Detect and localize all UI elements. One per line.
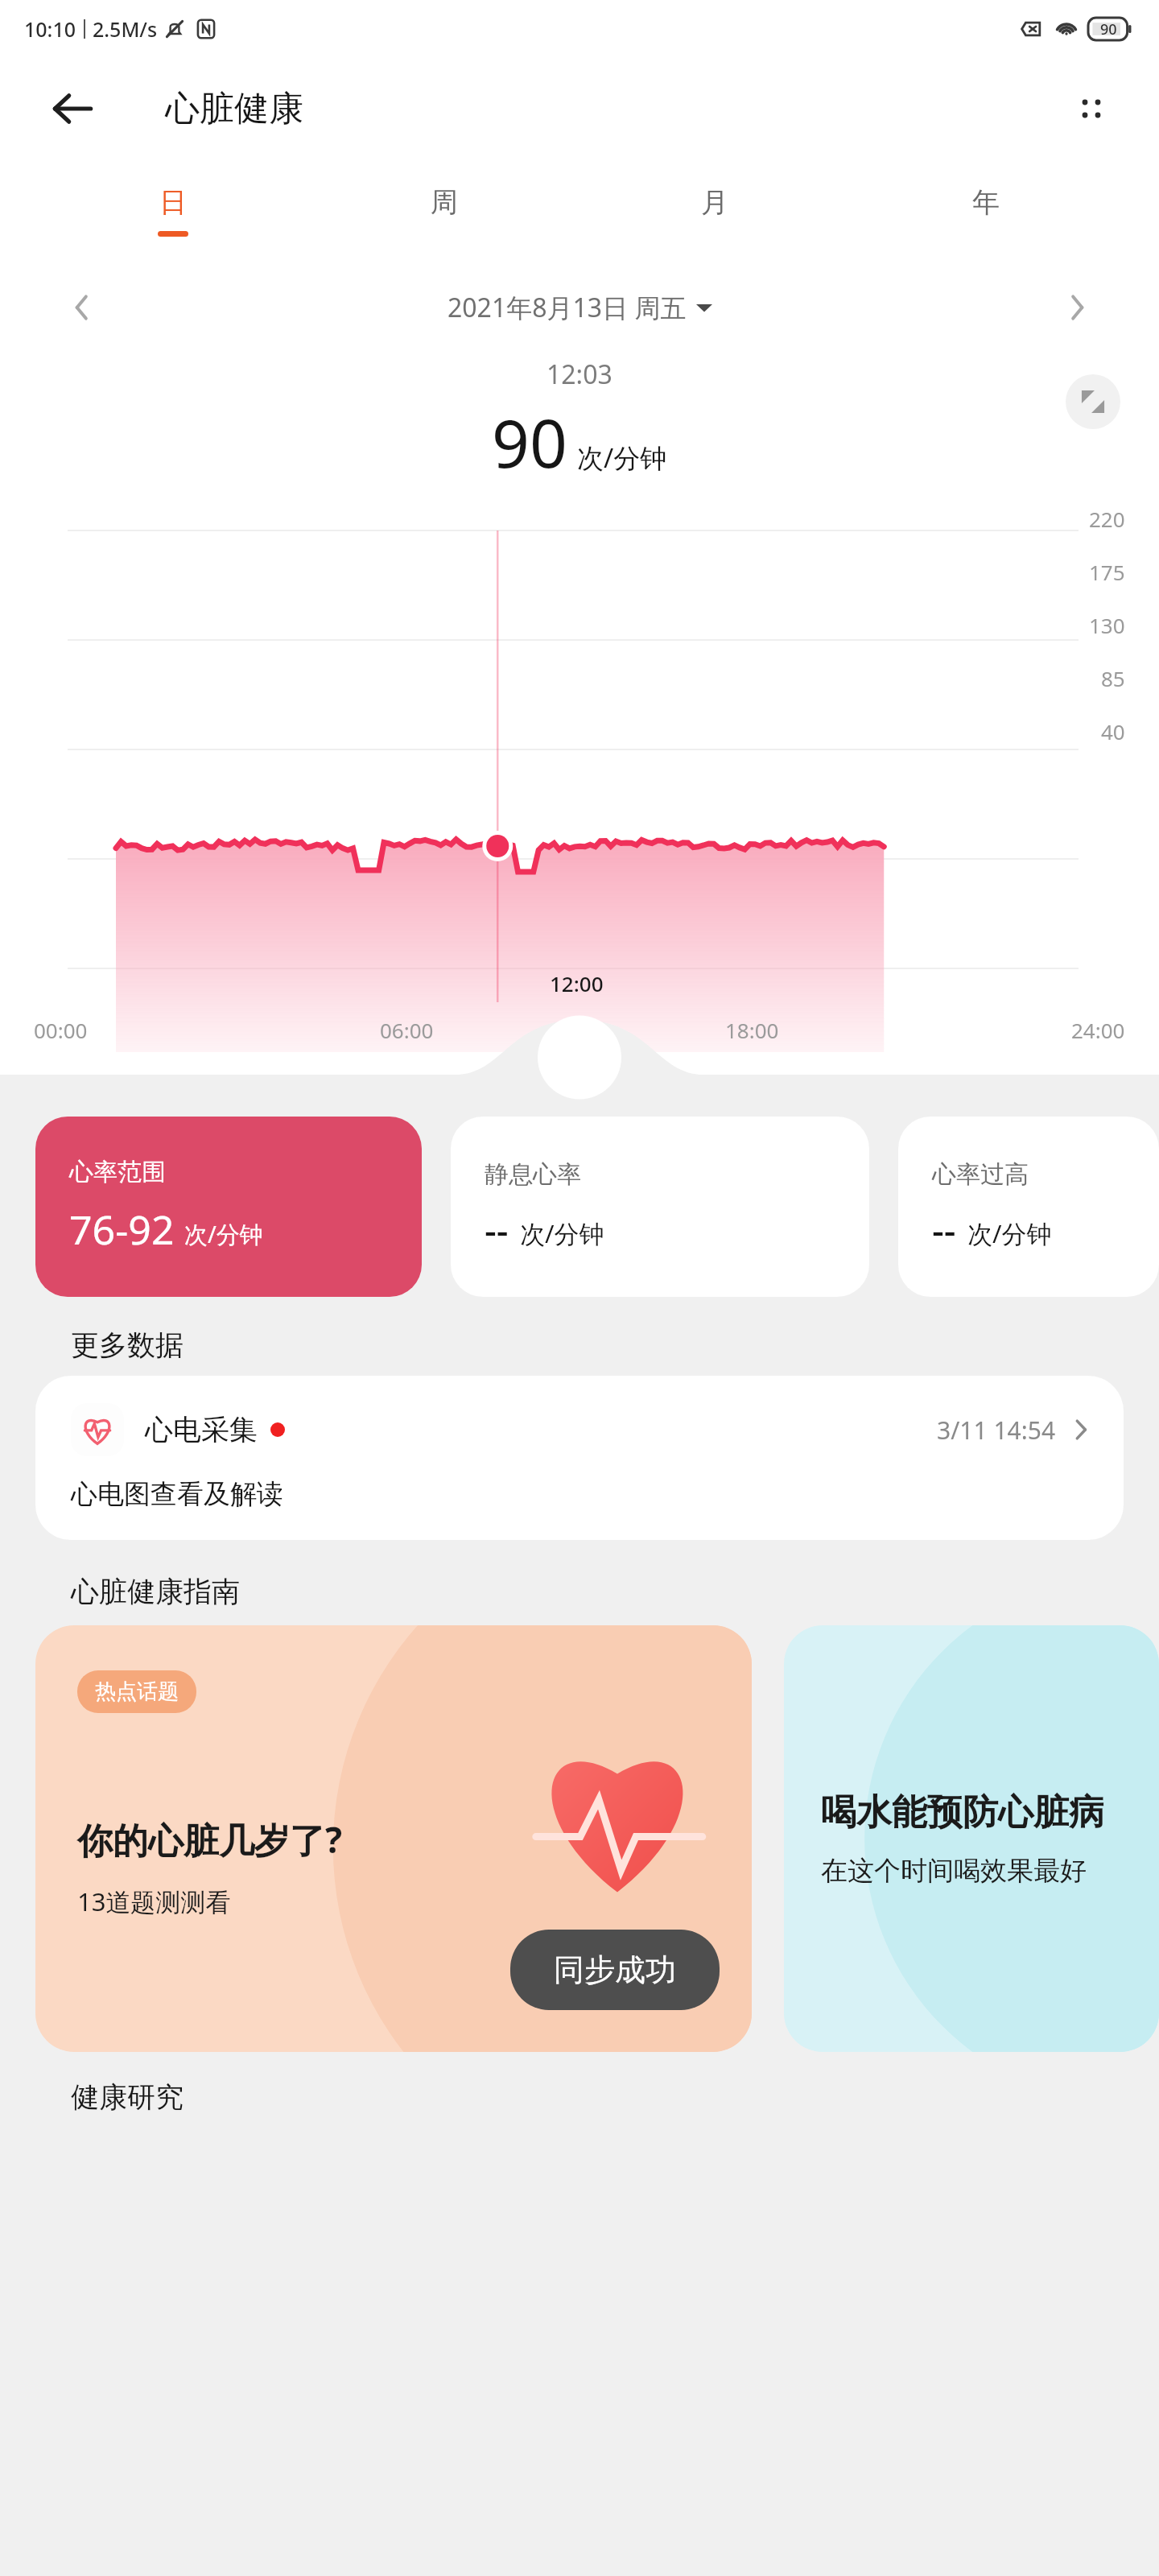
button[interactable]: 喝水能预防心脏病	[784, 1625, 1159, 2052]
staticText: 心脏健康指南	[71, 1574, 240, 1609]
staticText: 在这个时间喝效果最好	[821, 1854, 1087, 1888]
staticText: 心率过高	[932, 1159, 1029, 1190]
staticText: 3/11 14:54	[937, 1414, 1056, 1447]
staticText: 心率范围	[69, 1157, 166, 1187]
staticText: 12:03	[547, 357, 612, 392]
button[interactable]: 热点话题	[35, 1625, 752, 2052]
button[interactable]: 心率过高	[898, 1117, 1159, 1297]
staticText: --	[485, 1204, 509, 1255]
button[interactable]: 静息心率	[451, 1117, 869, 1297]
staticText: 心电图查看及解读	[71, 1477, 283, 1511]
staticText: 喝水能预防心脏病	[821, 1790, 1104, 1835]
staticText: 76-92	[69, 1202, 175, 1257]
staticText: 90	[1100, 19, 1117, 39]
staticText: 心电采集	[145, 1412, 258, 1447]
staticText: 00:00	[34, 1016, 88, 1044]
button[interactable]: 日	[137, 159, 209, 263]
staticText: 24:00	[1071, 1016, 1125, 1044]
staticText: 2.5M/s	[93, 15, 158, 43]
staticText: 220	[1089, 505, 1125, 533]
staticText: 85	[1101, 664, 1125, 692]
button[interactable]: 心电采集	[35, 1376, 1124, 1540]
button[interactable]: 2021年8月13日 周五	[448, 290, 712, 325]
button[interactable]: 更多选项	[1062, 80, 1120, 138]
staticText: 你的心脏几岁了?	[77, 1815, 342, 1864]
staticText: 心脏健康	[165, 87, 303, 130]
button[interactable]: 前一天	[56, 282, 108, 333]
staticText: 2021年8月13日 周五	[448, 290, 687, 325]
staticText: 健康研究	[71, 2079, 184, 2115]
button[interactable]: 返回	[47, 83, 98, 134]
staticText: 130	[1089, 611, 1125, 639]
staticText: 静息心率	[485, 1159, 581, 1190]
staticText: 06:00	[380, 1016, 434, 1044]
button[interactable]: 全屏查看	[1066, 374, 1120, 429]
staticText: 次/分钟	[184, 1218, 263, 1250]
staticText: 40	[1101, 717, 1125, 745]
staticText: 175	[1089, 558, 1125, 586]
staticText: 次/分钟	[520, 1216, 604, 1250]
staticText: 12:00	[550, 969, 604, 997]
staticText: 热点话题	[95, 1678, 179, 1705]
button[interactable]: 心率范围	[35, 1117, 422, 1297]
staticText: 月	[701, 185, 728, 220]
button[interactable]: 周	[408, 159, 481, 263]
button[interactable]: 月	[678, 159, 751, 263]
staticText: 13道题测测看	[77, 1885, 231, 1918]
button[interactable]: 后一天	[1051, 282, 1103, 333]
staticText: 90	[492, 397, 567, 487]
staticText: 年	[972, 185, 1000, 220]
staticText: 次/分钟	[577, 440, 667, 476]
staticText: 10:10	[24, 15, 76, 43]
staticText: 更多数据	[71, 1327, 184, 1363]
staticText: 同步成功	[554, 1951, 676, 1989]
staticText: 18:00	[725, 1016, 779, 1044]
button[interactable]: 年	[950, 159, 1022, 263]
staticText: --	[932, 1204, 956, 1255]
staticText: 日	[159, 185, 187, 220]
staticText: 周	[431, 185, 458, 220]
staticText: 次/分钟	[967, 1216, 1052, 1250]
